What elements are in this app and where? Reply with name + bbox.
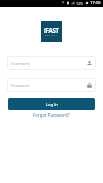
other: Username [86,60,93,67]
button[interactable]: Forgot Password? [32,111,71,119]
staticText: Forgot Password? [33,112,70,118]
other: Password [86,82,93,89]
staticText: Password [11,83,29,88]
staticText: CENTRAL [45,34,58,37]
staticText: Username [11,61,30,66]
button[interactable]: Username [7,56,96,70]
button[interactable]: Log In [8,98,95,110]
staticText: 17:55 [90,0,101,6]
button[interactable]: Password [7,78,96,92]
staticText: iFAST [44,26,59,34]
staticText: Log In [46,102,58,107]
staticText: 12% [76,1,84,6]
